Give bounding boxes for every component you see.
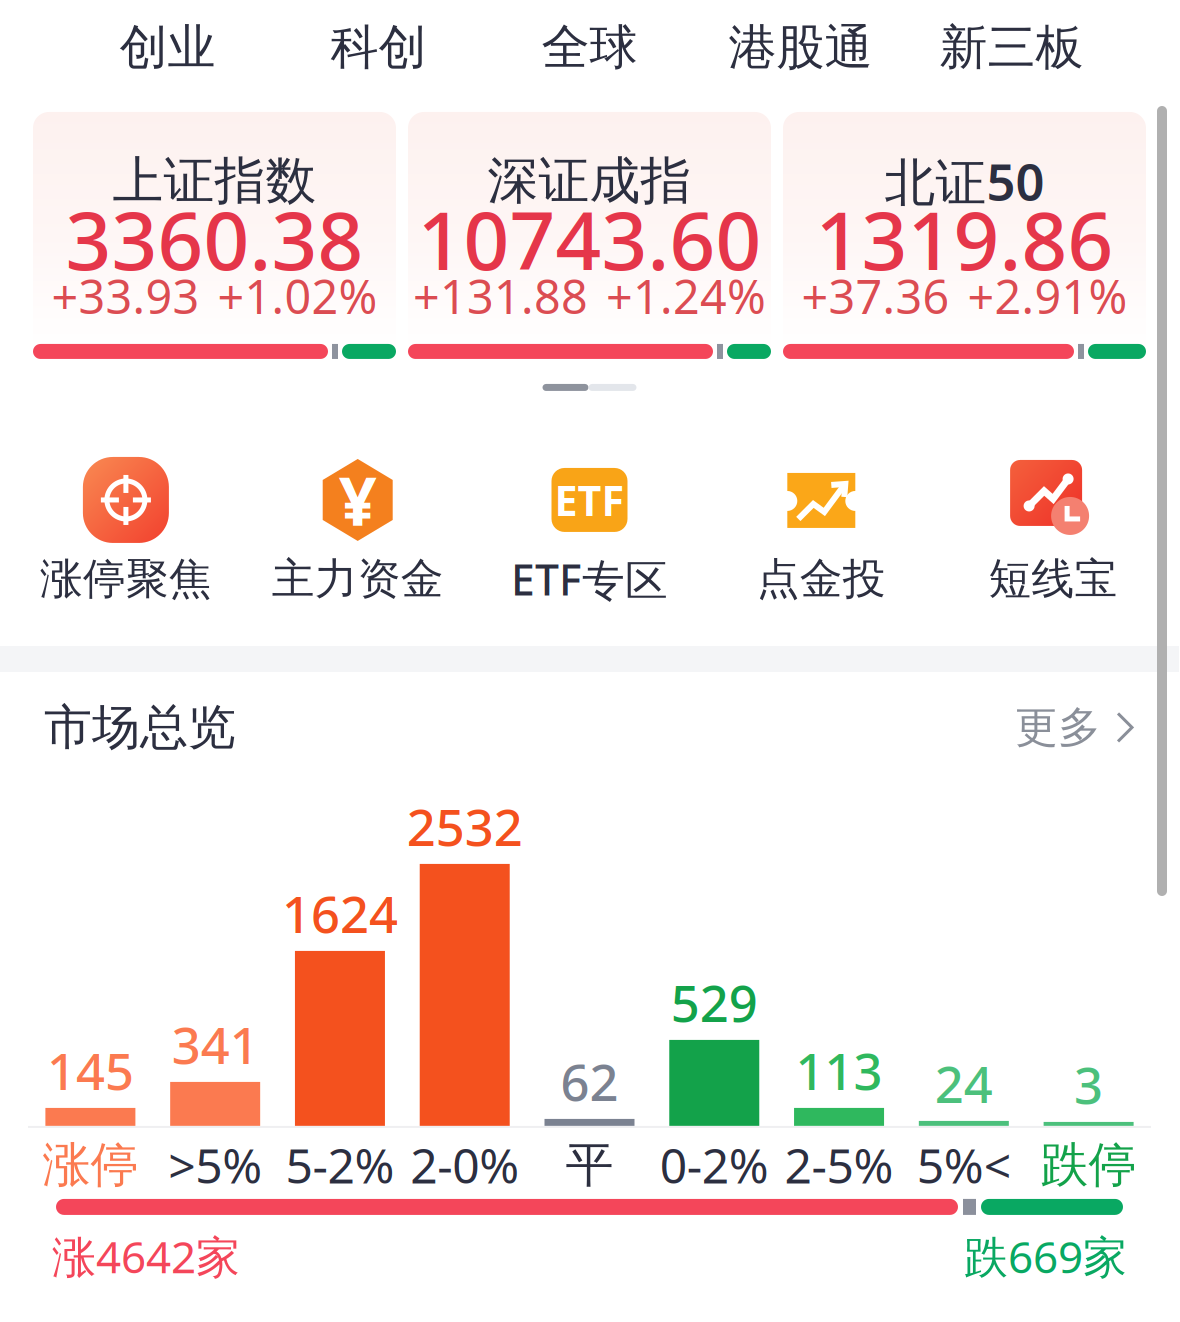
- staticText: 62: [560, 1048, 618, 1115]
- button[interactable]: 全球: [484, 18, 695, 77]
- staticText: 创业: [119, 18, 215, 77]
- staticText: 全球: [541, 18, 637, 77]
- staticText: >5%: [168, 1133, 262, 1197]
- button[interactable]: 深证成指: [408, 112, 771, 362]
- staticText: 3360.38: [65, 186, 363, 292]
- staticText: ETF专区: [511, 550, 668, 607]
- staticText: 跌669家: [964, 1227, 1127, 1285]
- button[interactable]: 涨停聚焦: [10, 457, 242, 601]
- staticText: 上证指数: [112, 150, 316, 212]
- button[interactable]: 短线宝: [937, 457, 1169, 601]
- button[interactable]: 港股通: [695, 18, 906, 77]
- button[interactable]: 新三板: [906, 18, 1117, 77]
- staticText: 涨停: [42, 1135, 138, 1194]
- staticText: +37.36: [801, 265, 949, 327]
- staticText: 平: [565, 1135, 613, 1194]
- staticText: 341: [172, 1011, 259, 1078]
- button[interactable]: ETF: [474, 457, 705, 601]
- staticText: 深证成指: [487, 150, 691, 212]
- staticText: 0-2%: [660, 1133, 769, 1197]
- staticText: 港股通: [728, 18, 872, 77]
- staticText: 24: [935, 1050, 993, 1117]
- button[interactable]: 上证指数: [33, 112, 396, 362]
- staticText: 新三板: [939, 18, 1083, 77]
- staticText: 北证50: [884, 147, 1044, 215]
- staticText: 2532: [407, 793, 523, 860]
- button[interactable]: 创业: [62, 18, 273, 77]
- staticText: 更多: [1015, 701, 1101, 754]
- button[interactable]: 北证50: [783, 112, 1146, 362]
- staticText: 1624: [282, 880, 398, 947]
- staticText: +1.02%: [217, 265, 377, 327]
- staticText: 主力资金: [272, 553, 444, 605]
- staticText: 涨停聚焦: [40, 553, 212, 605]
- staticText: 市场总览: [44, 698, 236, 757]
- staticText: +131.88: [413, 265, 588, 327]
- staticText: 点金投: [757, 553, 886, 605]
- staticText: 5-2%: [285, 1133, 394, 1197]
- staticText: 短线宝: [989, 553, 1118, 605]
- staticText: 2-5%: [785, 1133, 894, 1197]
- staticText: +1.24%: [606, 265, 766, 327]
- staticText: 涨4642家: [52, 1227, 240, 1285]
- staticText: 145: [47, 1037, 134, 1104]
- staticText: 跌停: [1041, 1135, 1137, 1194]
- button[interactable]: ¥: [242, 457, 474, 601]
- staticText: 10743.60: [417, 186, 761, 292]
- staticText: 2-0%: [410, 1133, 519, 1197]
- button[interactable]: 更多: [1015, 701, 1135, 754]
- button[interactable]: 点金投: [705, 457, 937, 601]
- staticText: ETF: [554, 472, 624, 527]
- staticText: 科创: [330, 18, 426, 77]
- staticText: 529: [671, 969, 758, 1036]
- staticText: 5%<: [917, 1133, 1011, 1197]
- staticText: 3: [1074, 1051, 1103, 1118]
- staticText: +2.91%: [967, 265, 1127, 327]
- staticText: ¥: [339, 456, 377, 544]
- staticText: +33.93: [51, 265, 199, 327]
- staticText: 1319.86: [815, 186, 1113, 292]
- staticText: 113: [796, 1037, 883, 1104]
- button[interactable]: 科创: [273, 18, 484, 77]
